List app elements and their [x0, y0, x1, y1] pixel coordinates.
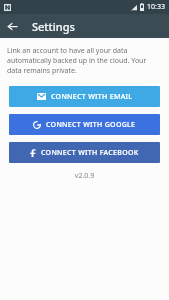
- button[interactable]: CONNECT WITH FACEBOOK: [9, 142, 160, 163]
- staticText: CONNECT WITH EMAIL: [51, 92, 133, 102]
- staticText: v2.0.9: [0, 171, 169, 181]
- button[interactable]: CONNECT WITH GOOGLE: [9, 114, 160, 135]
- button[interactable]: CONNECT WITH EMAIL: [9, 86, 160, 107]
- staticText: Settings: [32, 19, 75, 34]
- staticText: Link an account to have all your data au…: [7, 46, 162, 76]
- button[interactable]: Back: [0, 14, 24, 38]
- staticText: CONNECT WITH GOOGLE: [46, 120, 136, 130]
- staticText: CONNECT WITH FACEBOOK: [41, 148, 139, 158]
- staticText: 10:33: [147, 2, 165, 12]
